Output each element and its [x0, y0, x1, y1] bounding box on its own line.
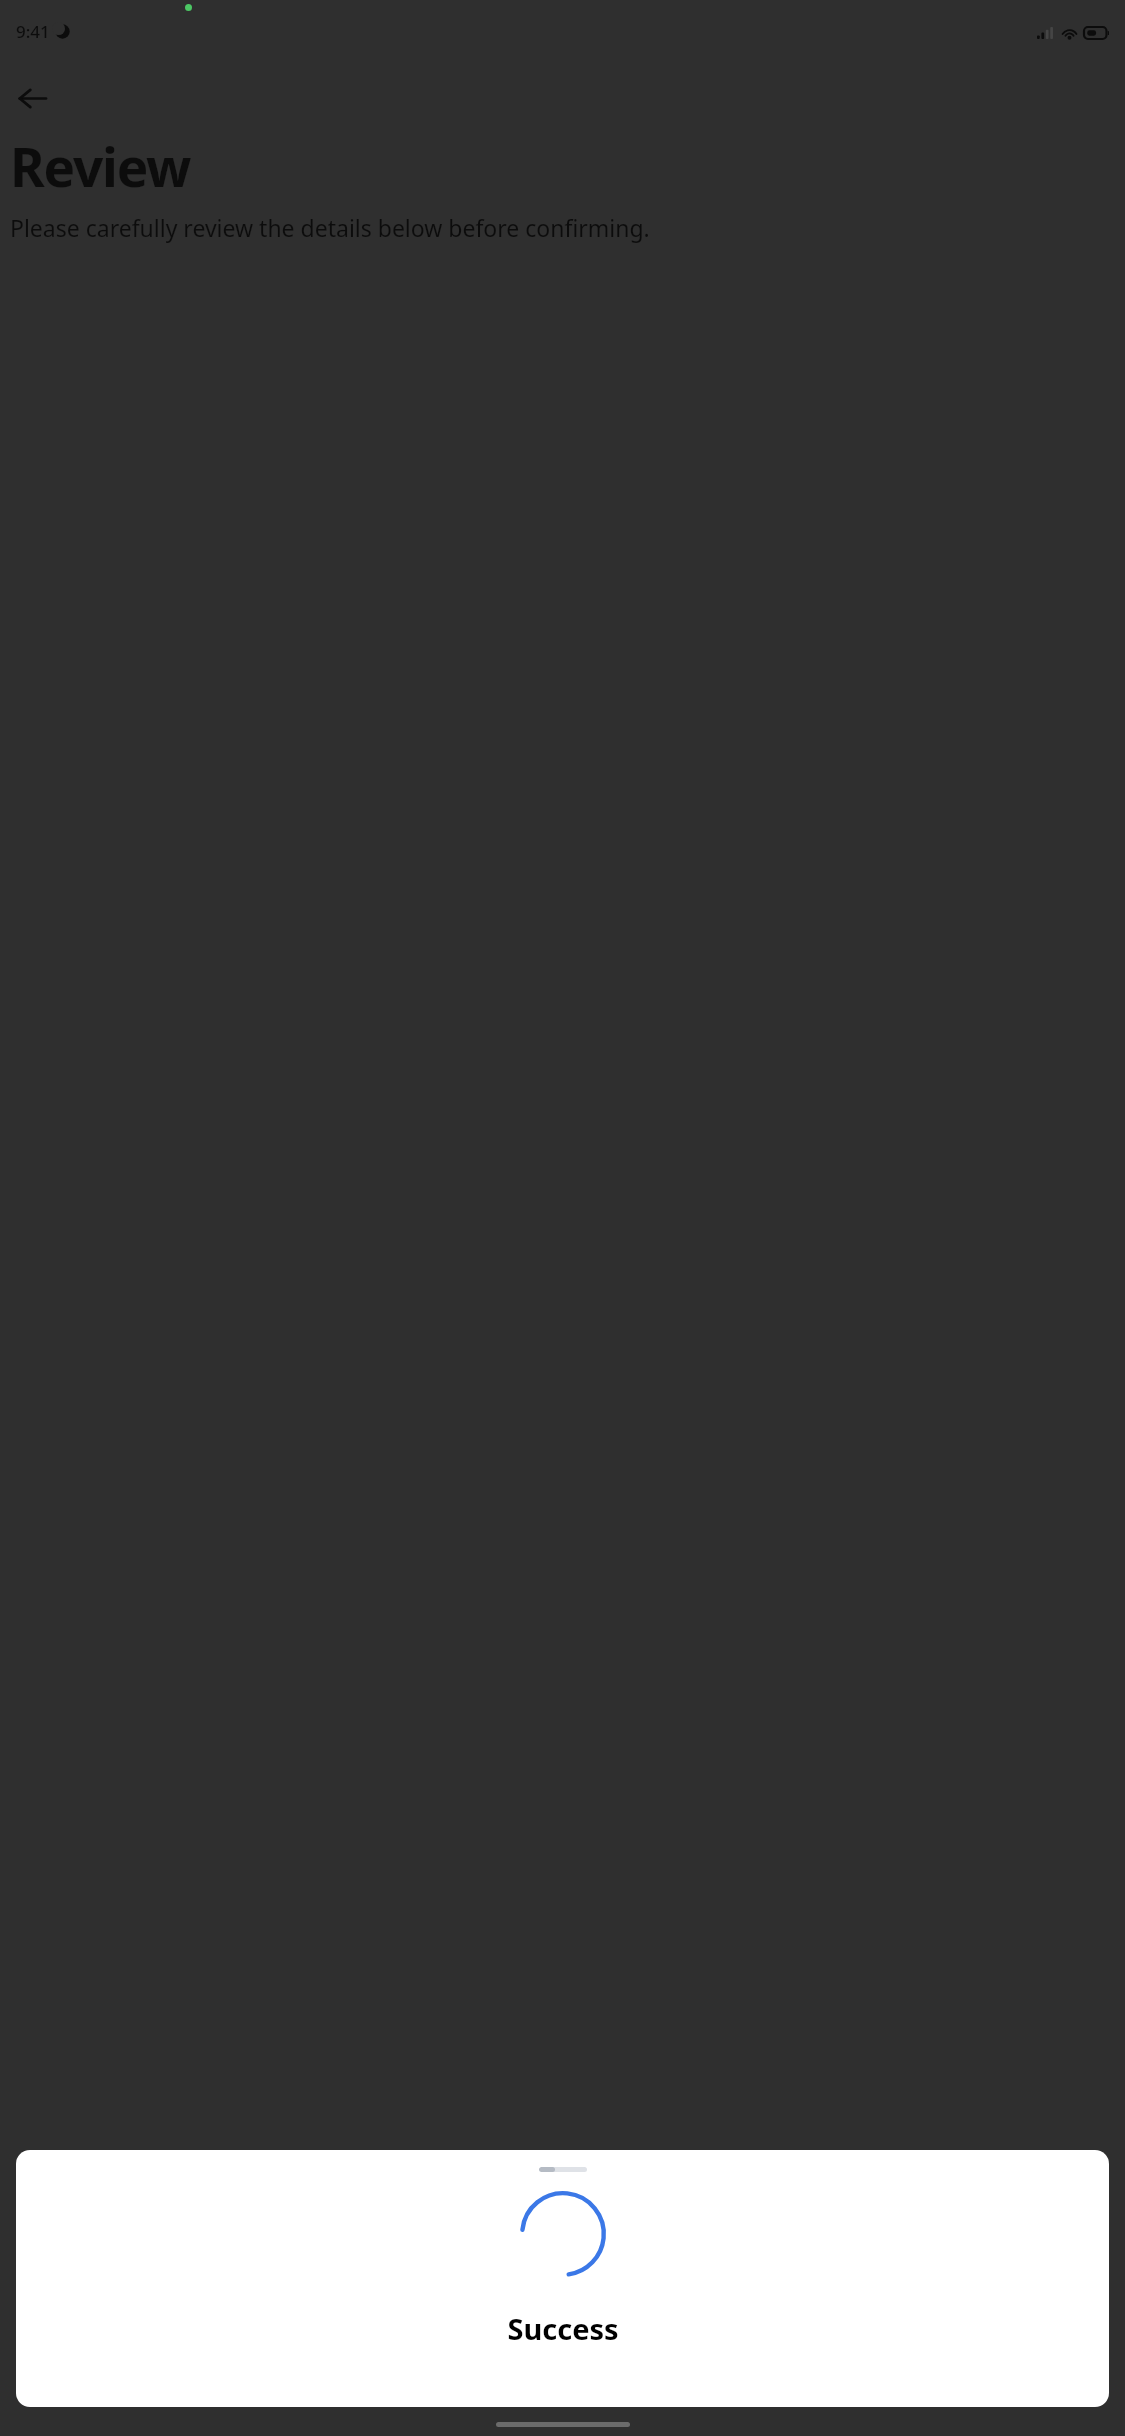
staticText: Success [507, 2309, 619, 2348]
button[interactable]: Success [16, 2150, 1109, 2407]
button[interactable]: Back [8, 74, 56, 122]
staticText: Please carefully review the details belo… [10, 212, 650, 243]
staticText: 9:41 [16, 20, 50, 43]
staticText: Review [10, 130, 191, 202]
